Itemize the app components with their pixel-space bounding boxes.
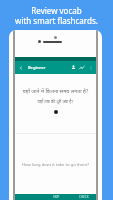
staticText: Beginner [28, 65, 46, 70]
button[interactable]: Progress [78, 64, 85, 71]
button[interactable]: SKIP [53, 194, 60, 200]
staticText: How long does it take to go there? [16, 162, 95, 168]
staticText: वहाँ जाने में कितना समय लगता है? [15, 87, 96, 94]
button[interactable]: Play audio [54, 110, 58, 114]
button[interactable]: Profile [70, 64, 77, 71]
button[interactable]: CHECK [79, 194, 89, 200]
staticText: SKIP [53, 195, 60, 199]
button[interactable]: Back [18, 65, 24, 71]
staticText: वहाँ तक की दूरी क्या है? [16, 99, 95, 105]
staticText: Review vocab with smart flashcards. [0, 5, 113, 26]
staticText: CHECK [79, 195, 89, 199]
button[interactable]: More options [87, 64, 94, 71]
